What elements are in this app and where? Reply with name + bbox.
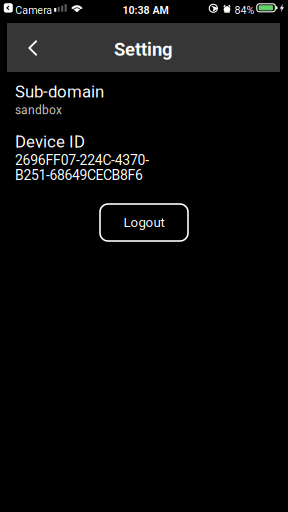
staticText: 84% xyxy=(235,4,255,16)
staticText: Logout xyxy=(123,215,164,230)
staticText: sandbox xyxy=(15,103,62,117)
staticText: B251-68649CECB8F6 xyxy=(15,167,143,183)
staticText: Sub-domain xyxy=(15,82,104,102)
button[interactable]: Back xyxy=(11,23,55,72)
staticText: Setting xyxy=(114,39,173,60)
button[interactable]: Logout xyxy=(100,204,188,241)
staticText: 2696FF07-224C-4370- xyxy=(15,152,149,168)
staticText: 10:38 AM xyxy=(122,4,168,16)
staticText: Camera xyxy=(15,4,52,16)
staticText: Device ID xyxy=(15,132,85,152)
